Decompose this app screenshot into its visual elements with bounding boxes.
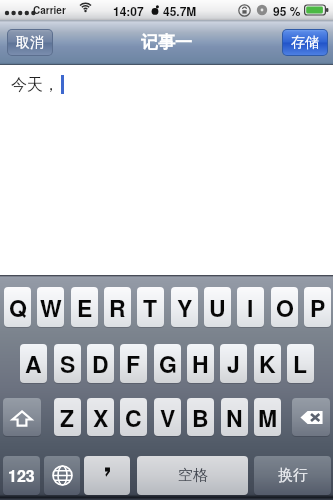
staticText: Carrier <box>33 3 66 17</box>
staticText: A <box>25 347 42 380</box>
staticText: X <box>93 401 109 434</box>
button[interactable]: U <box>204 287 231 327</box>
button[interactable]: A <box>20 344 47 383</box>
button[interactable]: F <box>120 344 147 383</box>
button[interactable] <box>84 456 130 495</box>
button[interactable]: G <box>154 344 181 383</box>
button[interactable]: N <box>221 398 248 436</box>
staticText: C <box>125 401 142 434</box>
staticText: 记事一 <box>141 32 192 53</box>
button[interactable]: C <box>120 398 147 436</box>
button[interactable]: Q <box>4 287 31 327</box>
staticText: N <box>226 401 243 434</box>
button[interactable]: T <box>137 287 164 327</box>
staticText: T <box>143 291 158 324</box>
button[interactable]: 换行 <box>254 456 331 495</box>
button[interactable]: O <box>271 287 298 327</box>
button[interactable]: R <box>104 287 131 327</box>
staticText: Y <box>177 291 193 324</box>
button[interactable]: B <box>187 398 214 436</box>
staticText: W <box>40 291 62 324</box>
staticText: B <box>192 401 209 434</box>
button[interactable]: D <box>87 344 114 383</box>
staticText: D <box>92 347 109 380</box>
staticText: F <box>126 347 141 380</box>
button[interactable]: L <box>287 344 314 383</box>
staticText: L <box>293 347 308 380</box>
button[interactable]: K <box>254 344 281 383</box>
button[interactable]: V <box>154 398 181 436</box>
staticText: P <box>310 291 326 324</box>
button[interactable]: M <box>254 398 281 436</box>
button[interactable]: I <box>237 287 264 327</box>
staticText: M <box>258 401 278 434</box>
staticText: Q <box>9 291 27 324</box>
staticText: K <box>259 347 276 380</box>
staticText: 14:07 <box>113 2 144 19</box>
button[interactable]: X <box>87 398 114 436</box>
staticText: 空格 <box>178 466 208 485</box>
staticText: V <box>160 401 176 434</box>
button[interactable]: Z <box>54 398 81 436</box>
staticText: G <box>159 347 177 380</box>
button[interactable]: 123 <box>3 456 40 495</box>
staticText: H <box>192 347 209 380</box>
staticText: J <box>227 347 240 380</box>
button[interactable]: H <box>187 344 214 383</box>
button[interactable]: 取消 <box>7 29 53 56</box>
button[interactable]: 空格 <box>137 456 248 495</box>
button[interactable]: W <box>37 287 64 327</box>
staticText: 取消 <box>16 34 44 52</box>
button[interactable]: 存储 <box>282 29 328 56</box>
staticText: O <box>276 291 294 324</box>
staticText: R <box>109 291 126 324</box>
button[interactable]: Switch keyboard <box>44 456 80 495</box>
button[interactable]: J <box>220 344 247 383</box>
staticText: 95 % <box>273 2 301 19</box>
button[interactable]: Y <box>171 287 198 327</box>
staticText: Z <box>60 401 75 434</box>
button[interactable]: S <box>54 344 81 383</box>
staticText: U <box>209 291 226 324</box>
staticText: S <box>60 347 76 380</box>
button[interactable]: P <box>304 287 331 327</box>
button[interactable]: E <box>71 287 98 327</box>
staticText: 123 <box>8 464 35 487</box>
button[interactable]: Delete <box>292 398 330 436</box>
button[interactable]: Shift <box>3 398 41 436</box>
staticText: 45.7M <box>163 2 197 19</box>
staticText: 今天， <box>11 75 59 95</box>
staticText: E <box>77 291 93 324</box>
staticText: 换行 <box>278 466 308 485</box>
staticText: 存储 <box>291 34 319 52</box>
staticText: I <box>247 291 254 324</box>
